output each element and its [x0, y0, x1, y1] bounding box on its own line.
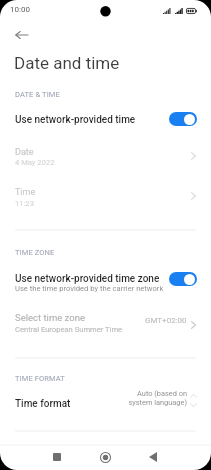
staticText: Date	[15, 147, 34, 158]
staticText: TIME ZONE	[15, 248, 55, 257]
button[interactable]	[0, 105, 211, 135]
staticText: 10:00	[10, 5, 30, 14]
staticText: Select time zone	[15, 312, 85, 323]
staticText: Use network-provided time zone	[15, 273, 160, 285]
button[interactable]	[0, 139, 211, 177]
button[interactable]: Back	[139, 443, 167, 470]
button[interactable]: Toggle	[169, 272, 197, 286]
staticText: Central European Summer Time	[15, 325, 123, 334]
staticText: TIME FORMAT	[15, 374, 65, 383]
staticText: Time	[15, 187, 36, 198]
staticText: Use network-provided time	[15, 114, 136, 126]
staticText: Time format	[15, 398, 71, 410]
button[interactable]	[0, 263, 211, 300]
button[interactable]: Recent apps	[43, 443, 71, 470]
button[interactable]: Toggle	[169, 112, 197, 126]
staticText: 4 May 2022	[15, 158, 55, 167]
staticText: 11:23	[15, 199, 34, 208]
staticText: Use the time provided by the carrier net…	[15, 284, 164, 293]
staticText: Auto (based on system language)	[128, 389, 187, 407]
staticText: DATE & TIME	[15, 90, 60, 99]
staticText: GMT+02:00	[145, 316, 187, 325]
button[interactable]	[0, 177, 211, 214]
button[interactable]	[0, 303, 211, 341]
staticText: Date and time	[14, 53, 120, 73]
button[interactable]: Home	[91, 443, 119, 470]
button[interactable]	[0, 387, 211, 418]
button[interactable]: Back	[10, 24, 32, 46]
other: Change time format	[190, 393, 197, 408]
